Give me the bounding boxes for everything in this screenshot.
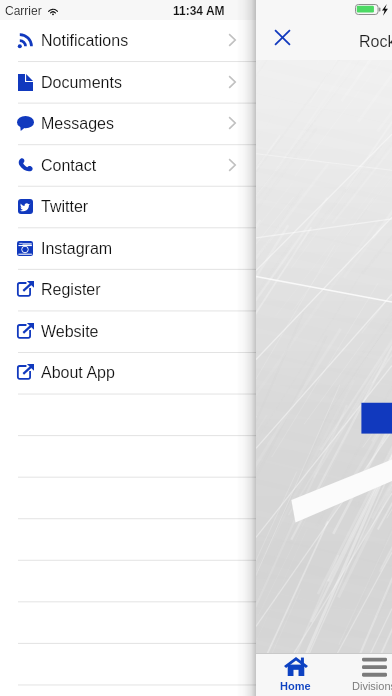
- button[interactable]: Divisions: [335, 653, 392, 696]
- button[interactable]: Register: [0, 269, 256, 311]
- staticText: 11:34 AM: [173, 4, 225, 17]
- button[interactable]: Messages: [0, 103, 256, 145]
- button[interactable]: [0, 602, 256, 644]
- staticText: Contact: [41, 157, 97, 175]
- button[interactable]: [0, 436, 256, 478]
- button[interactable]: Website: [0, 311, 256, 353]
- button[interactable]: [0, 519, 256, 561]
- staticText: Instagram: [41, 240, 113, 258]
- staticText: Documents: [41, 74, 122, 92]
- staticText: Rockford: [359, 33, 392, 51]
- staticText: About App: [41, 364, 115, 382]
- staticText: Divisions: [352, 680, 392, 692]
- button[interactable]: [0, 643, 256, 685]
- staticText: Register: [41, 281, 101, 299]
- staticText: Messages: [41, 115, 114, 133]
- button[interactable]: [0, 560, 256, 602]
- button[interactable]: Contact: [0, 145, 256, 187]
- button[interactable]: [0, 477, 256, 519]
- button[interactable]: Instagram: [0, 228, 256, 270]
- button[interactable]: Documents: [0, 62, 256, 104]
- staticText: Home: [280, 680, 311, 692]
- button[interactable]: [0, 394, 256, 436]
- button[interactable]: Twitter: [0, 186, 256, 228]
- button[interactable]: Close drawer: [269, 24, 295, 50]
- staticText: Notifications: [41, 32, 129, 50]
- staticText: Carrier: [5, 4, 42, 17]
- button[interactable]: Notifications: [0, 20, 256, 62]
- button[interactable]: Home: [256, 653, 335, 696]
- staticText: Website: [41, 323, 99, 341]
- button[interactable]: About App: [0, 352, 256, 394]
- staticText: Twitter: [41, 198, 89, 216]
